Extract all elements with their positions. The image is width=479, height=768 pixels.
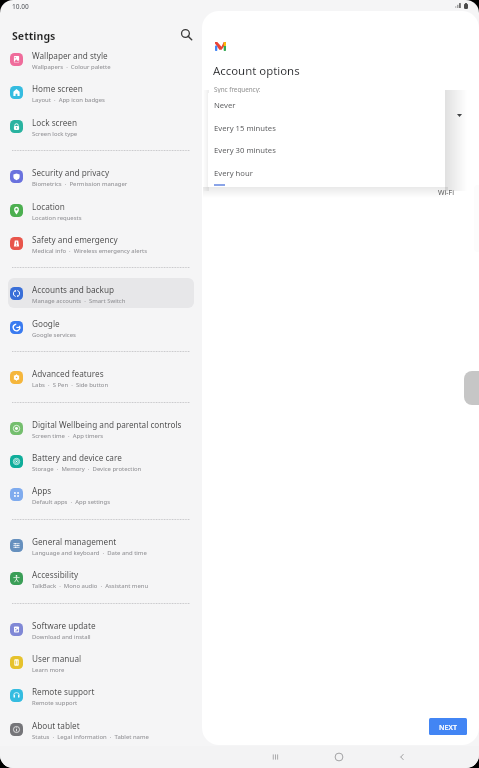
staticText: Google services	[32, 331, 76, 339]
button[interactable]: Accessibility	[8, 563, 194, 593]
staticText: Sync frequency:	[214, 85, 261, 94]
staticText: Never	[214, 100, 236, 110]
button[interactable]: Edge panel handle	[464, 371, 479, 405]
staticText: Manage accounts · Smart Switch	[32, 297, 126, 305]
staticText: TalkBack · Mono audio · Assistant menu	[32, 582, 149, 590]
staticText: Language and keyboard · Date and time	[32, 549, 147, 557]
staticText: Home screen	[32, 83, 83, 94]
button[interactable]: Never	[208, 93, 445, 116]
staticText: 10.00	[12, 2, 29, 11]
staticText: Biometrics · Permission manager	[32, 180, 128, 188]
button[interactable]: Every 15 minutes	[208, 116, 445, 139]
staticText: Default apps · App settings	[32, 498, 111, 506]
button[interactable]: Location	[8, 195, 194, 225]
staticText: Account options	[213, 63, 300, 79]
staticText: Location	[32, 201, 65, 212]
staticText: Medical info · Wireless emergency alerts	[32, 247, 148, 255]
button[interactable]: Apps	[8, 479, 194, 509]
staticText: Accessibility	[32, 569, 79, 580]
button[interactable]: Security and privacy	[8, 161, 194, 191]
staticText: Advanced features	[32, 368, 104, 379]
staticText: Screen lock type	[32, 130, 78, 138]
staticText: Every 15 minutes	[214, 123, 276, 133]
button[interactable]: Advanced features	[8, 362, 194, 392]
button[interactable]: Every 30 minutes	[208, 138, 445, 161]
staticText: User manual	[32, 653, 82, 664]
staticText: Accounts and backup	[32, 284, 115, 295]
staticText: Every hour	[214, 168, 253, 178]
staticText: Storage · Memory · Device protection	[32, 465, 142, 473]
staticText: Lock screen	[32, 117, 78, 128]
staticText: Battery and device care	[32, 452, 122, 463]
button[interactable]: Remote support	[8, 680, 194, 710]
button[interactable]: Digital Wellbeing and parental controls	[8, 413, 194, 443]
staticText: NEXT	[439, 722, 458, 732]
button[interactable]: Accounts and backup	[8, 278, 194, 308]
staticText: Learn more	[32, 666, 65, 674]
button[interactable]: Google	[8, 312, 194, 342]
staticText: Apps	[32, 485, 52, 496]
staticText: Wallpapers · Colour palette	[32, 63, 111, 71]
staticText: Digital Wellbeing and parental controls	[32, 419, 182, 430]
button[interactable]: General management	[8, 530, 194, 560]
staticText: Remote support	[32, 699, 78, 707]
staticText: Screen time · App timers	[32, 432, 104, 440]
staticText: Remote support	[32, 686, 95, 697]
staticText: Security and privacy	[32, 167, 110, 178]
staticText: Wi-Fi	[438, 188, 455, 198]
staticText: General management	[32, 536, 117, 547]
button[interactable]: User manual	[8, 647, 194, 677]
staticText: Download and install	[32, 633, 91, 641]
staticText: Google	[32, 318, 60, 329]
staticText: Settings	[12, 29, 56, 43]
button[interactable]: Home screen	[8, 77, 194, 107]
button[interactable]: Safety and emergency	[8, 228, 194, 258]
staticText: Status · Legal information · Tablet name	[32, 733, 149, 741]
button[interactable]: Wallpaper and style	[8, 44, 194, 74]
staticText: Labs · S Pen · Side button	[32, 381, 109, 389]
button[interactable]: Software update	[8, 614, 194, 644]
staticText: Location requests	[32, 214, 82, 222]
staticText: About tablet	[32, 720, 80, 731]
button[interactable]: Search	[177, 25, 196, 44]
button[interactable]: Battery and device care	[8, 446, 194, 476]
button[interactable]: Recents	[260, 746, 290, 768]
button[interactable]: Every hour	[208, 161, 445, 184]
staticText: Safety and emergency	[32, 234, 118, 245]
button[interactable]: Lock screen	[8, 111, 194, 141]
button[interactable]: Home	[324, 746, 354, 768]
button[interactable]: NEXT	[429, 718, 467, 735]
staticText: Software update	[32, 620, 96, 631]
staticText: Every 30 minutes	[214, 145, 276, 155]
staticText: Wallpaper and style	[32, 50, 108, 61]
button[interactable]: Back	[387, 746, 417, 768]
button[interactable]: About tablet	[8, 714, 194, 744]
staticText: Layout · App icon badges	[32, 96, 105, 104]
